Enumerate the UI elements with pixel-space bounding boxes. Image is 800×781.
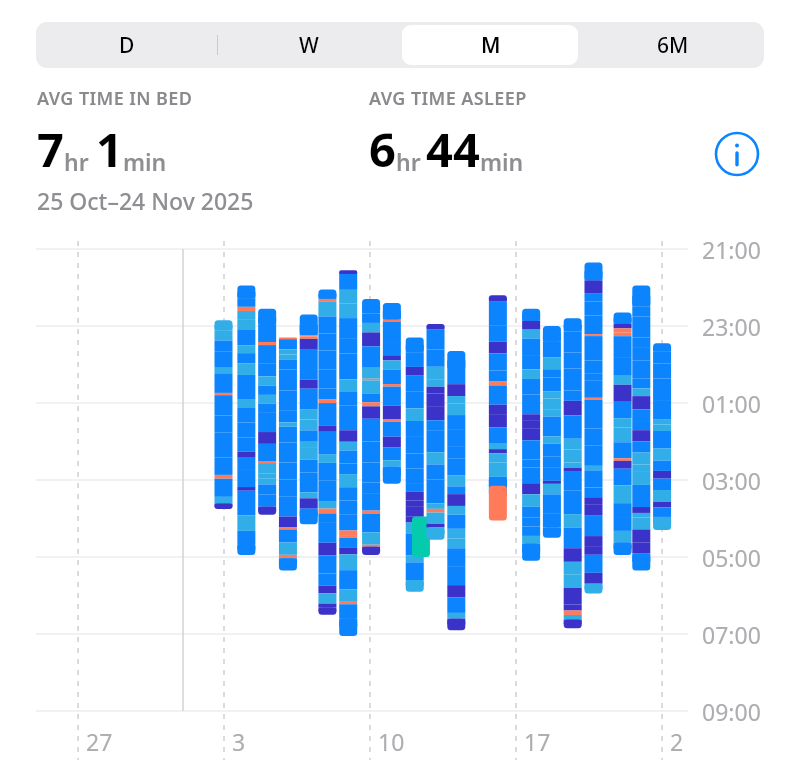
button[interactable]: W bbox=[218, 22, 400, 68]
staticText: W bbox=[299, 31, 319, 60]
button[interactable]: D bbox=[36, 22, 218, 68]
staticText: 1 bbox=[96, 117, 123, 181]
staticText: D bbox=[119, 31, 135, 60]
staticText: 3 bbox=[232, 726, 246, 757]
staticText: 23:00 bbox=[702, 311, 761, 342]
staticText: 7 bbox=[37, 117, 64, 181]
staticText: 6 bbox=[369, 117, 396, 181]
staticText: AVG TIME IN BED bbox=[37, 86, 193, 111]
staticText: 17 bbox=[524, 726, 551, 757]
staticText: 2 bbox=[670, 726, 684, 757]
button[interactable]: M bbox=[400, 22, 582, 68]
staticText: 25 Oct–24 Nov 2025 bbox=[37, 185, 254, 216]
staticText: 03:00 bbox=[702, 465, 761, 496]
staticText: 01:00 bbox=[702, 388, 761, 419]
staticText: hr bbox=[396, 146, 421, 177]
staticText: min bbox=[123, 146, 167, 177]
staticText: min bbox=[480, 146, 524, 177]
staticText: 21:00 bbox=[702, 234, 761, 265]
staticText: 09:00 bbox=[702, 696, 761, 727]
staticText: 6M bbox=[657, 31, 689, 60]
staticText: AVG TIME ASLEEP bbox=[369, 86, 527, 111]
staticText: M bbox=[481, 31, 501, 60]
staticText: 05:00 bbox=[702, 542, 761, 573]
staticText: 07:00 bbox=[702, 619, 761, 650]
staticText: 10 bbox=[378, 726, 405, 757]
staticText: 44 bbox=[426, 117, 480, 181]
button[interactable]: More information about sleep data bbox=[714, 131, 760, 177]
button[interactable]: 6M bbox=[582, 22, 764, 68]
staticText: hr bbox=[64, 146, 89, 177]
staticText: 27 bbox=[86, 726, 113, 757]
